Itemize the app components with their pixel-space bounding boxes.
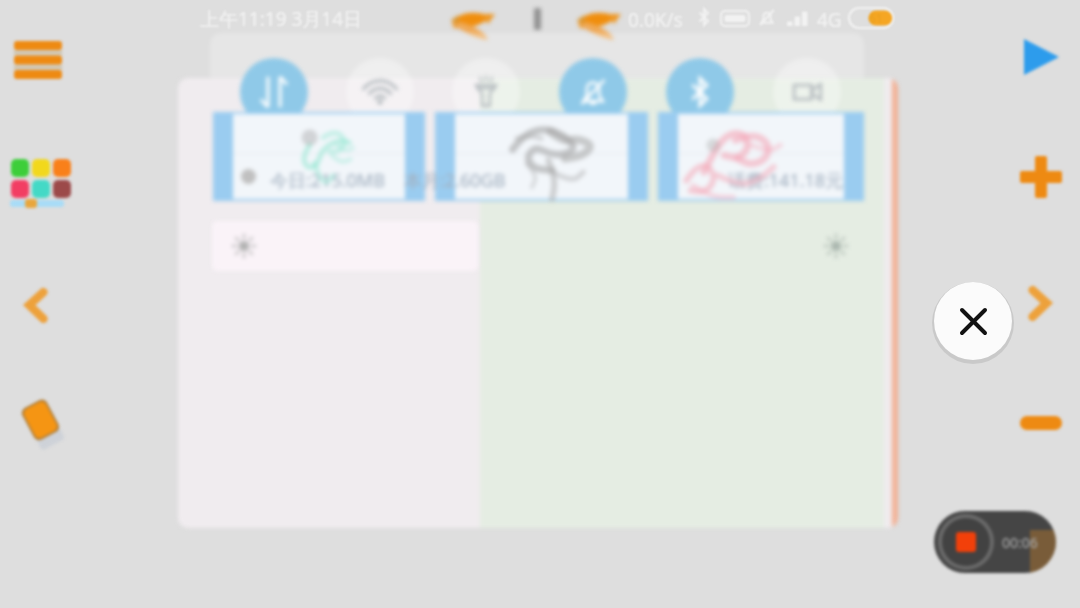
- button[interactable]: Flashlight: [452, 58, 520, 126]
- button[interactable]: Play: [1016, 32, 1066, 82]
- button[interactable]: Previous: [14, 282, 60, 328]
- button[interactable]: Brightness: [212, 221, 478, 271]
- button[interactable]: Data card: [658, 112, 864, 201]
- button[interactable]: Next: [1016, 280, 1062, 326]
- staticText: 话费:141.18元: [728, 168, 844, 193]
- button[interactable]: Colors: [8, 155, 70, 211]
- button[interactable]: Stop recording: [934, 511, 1056, 573]
- button[interactable]: Data card: [213, 112, 425, 201]
- staticText: 本月:2.60GB: [404, 168, 506, 193]
- button[interactable]: Bluetooth: [666, 58, 734, 126]
- button[interactable]: Add: [1016, 152, 1066, 202]
- button[interactable]: Menu: [12, 36, 66, 84]
- button[interactable]: Remove: [1014, 402, 1068, 444]
- button[interactable]: Data card: [435, 112, 648, 201]
- button[interactable]: Wi-Fi: [346, 58, 414, 126]
- staticText: 上午11:19 3月14日: [200, 6, 363, 32]
- staticText: 今日:215.0MB: [270, 168, 385, 193]
- staticText: 61: [869, 10, 883, 26]
- button[interactable]: Screen recorder: [773, 58, 841, 126]
- staticText: 4G: [817, 7, 842, 33]
- button[interactable]: Silent: [559, 58, 627, 126]
- button[interactable]: Mobile data: [240, 58, 308, 126]
- button[interactable]: Close: [934, 282, 1012, 360]
- staticText: 0.0K/s: [628, 7, 683, 33]
- button[interactable]: Eraser: [12, 394, 70, 452]
- staticText: 00:06: [1002, 533, 1038, 552]
